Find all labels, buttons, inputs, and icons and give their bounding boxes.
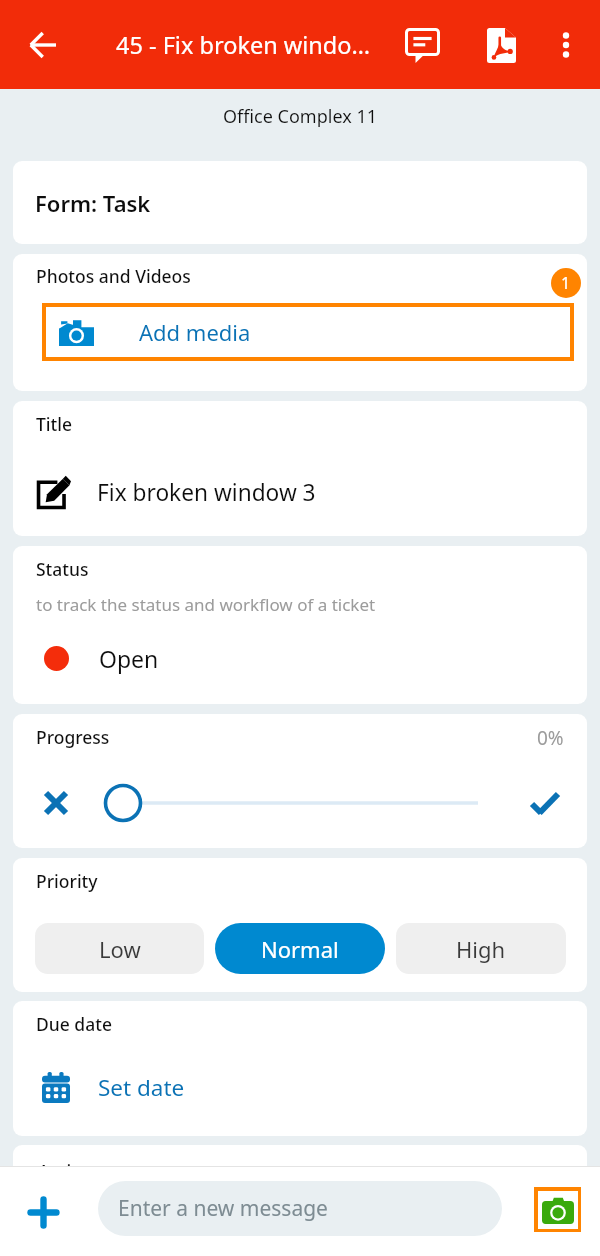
button[interactable]: More options	[532, 11, 600, 79]
button[interactable]: PDF	[470, 14, 532, 76]
staticText: Open	[99, 643, 159, 674]
staticText: Due date	[36, 1012, 112, 1036]
button[interactable]: High	[396, 923, 566, 974]
button[interactable]: Low	[35, 923, 204, 974]
button[interactable]: Add media	[42, 303, 574, 361]
staticText: Set date	[98, 1072, 185, 1103]
button[interactable]: Take photo	[534, 1187, 581, 1232]
staticText: Assignee	[38, 1159, 114, 1166]
staticText: Add media	[139, 317, 251, 347]
staticText: Low	[99, 934, 141, 964]
staticText: to track the status and workflow of a ti…	[36, 593, 376, 616]
staticText: Status	[36, 557, 89, 581]
staticText: 45 - Fix broken windo…	[116, 29, 371, 61]
staticText: Form: Task	[35, 188, 151, 218]
button[interactable]: Back	[14, 16, 72, 74]
staticText: Fix broken window 3	[97, 477, 316, 508]
staticText: 0%	[537, 725, 564, 751]
staticText: Normal	[261, 934, 339, 964]
staticText: Office Complex 11	[0, 104, 600, 129]
button[interactable]: Comments	[375, 14, 470, 76]
button[interactable]: Normal	[215, 923, 385, 974]
staticText: Progress	[36, 725, 110, 749]
button[interactable]: Add attachment	[15, 1184, 71, 1240]
staticText: Enter a new message	[118, 1194, 328, 1223]
staticText: Title	[36, 412, 73, 436]
staticText: 1	[561, 272, 571, 294]
button[interactable]: Enter a new message	[98, 1181, 502, 1236]
staticText: High	[456, 934, 506, 964]
staticText: Priority	[36, 869, 98, 893]
staticText: Photos and Videos	[36, 264, 191, 288]
